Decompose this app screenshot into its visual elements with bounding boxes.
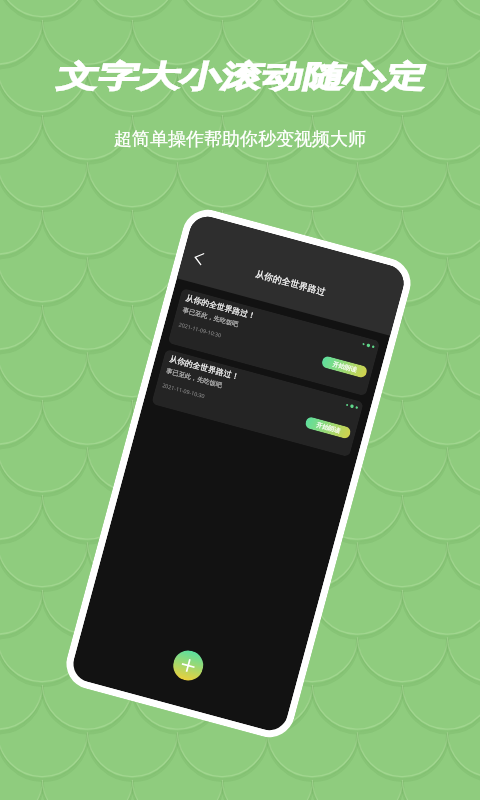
button[interactable]: 从你的全世界路过！ (151, 349, 364, 457)
button[interactable]: 开始朗读 (321, 355, 368, 379)
button[interactable]: Back (185, 245, 212, 272)
staticText: 超简单操作帮助你秒变视频大师 (114, 128, 366, 151)
button[interactable]: Add (170, 647, 207, 684)
button[interactable]: More options (361, 341, 375, 350)
button[interactable]: More options (345, 402, 359, 411)
button[interactable]: 开始朗读 (304, 416, 352, 440)
staticText: 事已至此，先吃饭吧 (165, 367, 223, 390)
staticText: 事已至此，先吃饭吧 (182, 306, 240, 329)
staticText: 从你的全世界路过！ (168, 353, 240, 382)
button[interactable]: 从你的全世界路过！ (168, 288, 380, 396)
staticText: 文字大小滚动随心定 (56, 58, 424, 96)
staticText: 2021-11-09-10:30 (162, 381, 206, 399)
staticText: 开始朗读 (315, 421, 342, 435)
staticText: 开始朗读 (332, 360, 358, 374)
staticText: 2021-11-09-10:30 (178, 320, 222, 339)
staticText: 从你的全世界路过！ (185, 292, 257, 321)
staticText: 从你的全世界路过 (254, 268, 327, 297)
